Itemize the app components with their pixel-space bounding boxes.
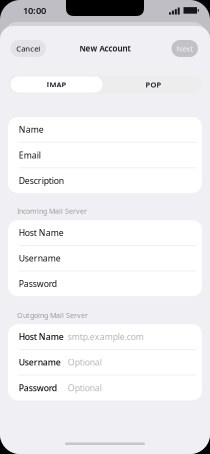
button[interactable]: Cancel: [10, 40, 46, 57]
button[interactable]: POP: [105, 75, 202, 94]
button[interactable]: Host Name: [8, 220, 202, 245]
button[interactable]: Next: [171, 40, 198, 57]
staticText: smtp.example.com: [68, 331, 144, 342]
button[interactable]: Username: [8, 350, 202, 375]
staticText: Username: [19, 356, 61, 368]
button[interactable]: IMAP: [8, 75, 105, 94]
staticText: POP: [145, 79, 161, 89]
staticText: Outgoing Mail Server: [17, 310, 88, 320]
staticText: Description: [19, 175, 64, 186]
staticText: 10:00: [23, 4, 46, 17]
button[interactable]: Description: [8, 168, 202, 193]
button[interactable]: Host Name: [8, 324, 202, 349]
staticText: Host Name: [19, 227, 64, 238]
staticText: Cancel: [16, 43, 40, 54]
button[interactable]: Password: [8, 271, 202, 296]
staticText: Email: [19, 149, 41, 161]
button[interactable]: Password: [8, 375, 202, 400]
button[interactable]: Name: [8, 117, 202, 142]
staticText: Password: [19, 382, 57, 394]
staticText: Name: [19, 124, 44, 135]
staticText: Optional: [68, 382, 102, 394]
staticText: Host Name: [19, 331, 64, 342]
staticText: New Account: [79, 43, 130, 54]
staticText: IMAP: [46, 79, 66, 89]
staticText: Incoming Mail Server: [17, 206, 87, 216]
button[interactable]: Username: [8, 246, 202, 271]
staticText: Next: [176, 43, 193, 54]
staticText: Username: [19, 252, 61, 264]
staticText: Optional: [68, 356, 102, 368]
button[interactable]: Email: [8, 143, 202, 167]
staticText: Password: [19, 278, 57, 289]
